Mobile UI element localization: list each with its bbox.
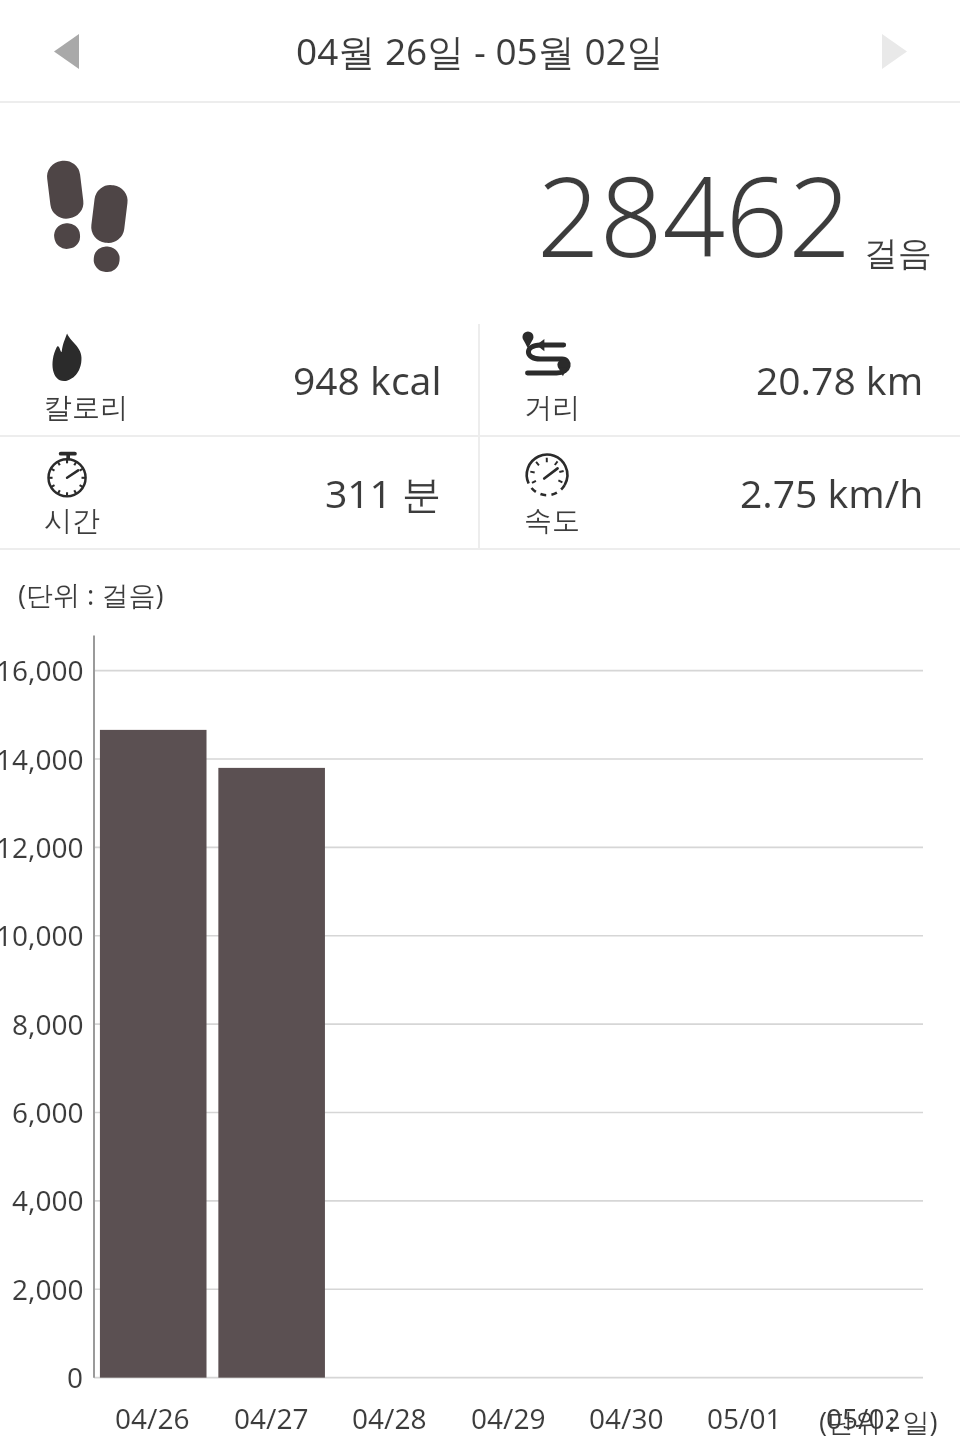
staticText: 8,000 (12, 1005, 84, 1043)
button[interactable]: Previous week (28, 13, 104, 89)
staticText: 05/02 (826, 1399, 901, 1437)
staticText: 948 kcal (293, 353, 442, 406)
button[interactable]: 칼로리 (0, 324, 478, 435)
button[interactable]: 거리 (480, 324, 960, 435)
staticText: 2.75 km/h (740, 466, 924, 519)
staticText: 걸음 (864, 232, 932, 275)
button[interactable]: 속도 (480, 437, 960, 548)
staticText: 0 (67, 1358, 84, 1396)
staticText: 04/28 (352, 1399, 427, 1437)
staticText: 4,000 (12, 1181, 84, 1219)
staticText: 12,000 (0, 828, 84, 866)
staticText: 속도 (524, 503, 580, 538)
staticText: 04/29 (471, 1399, 546, 1437)
staticText: 05/01 (707, 1399, 782, 1437)
staticText: 04/27 (234, 1399, 309, 1437)
staticText: 20.78 km (756, 353, 924, 406)
staticText: 311 분 (325, 466, 442, 519)
staticText: 14,000 (0, 740, 84, 778)
staticText: 시간 (44, 503, 100, 538)
staticText: 10,000 (0, 916, 84, 954)
staticText: 16,000 (0, 651, 84, 689)
staticText: (단위 : 걸음) (18, 576, 164, 613)
staticText: 칼로리 (44, 390, 128, 425)
staticText: 28462 (537, 139, 852, 289)
button[interactable]: Next week (856, 13, 932, 89)
staticText: 거리 (524, 390, 580, 425)
button[interactable]: 시간 (0, 437, 478, 548)
staticText: 6,000 (12, 1093, 84, 1131)
staticText: 04/30 (589, 1399, 664, 1437)
staticText: 2,000 (12, 1270, 84, 1308)
staticText: 04월 26일 - 05월 02일 (296, 25, 664, 76)
staticText: (단위 : 일) (819, 1403, 938, 1440)
staticText: 04/26 (115, 1399, 190, 1437)
